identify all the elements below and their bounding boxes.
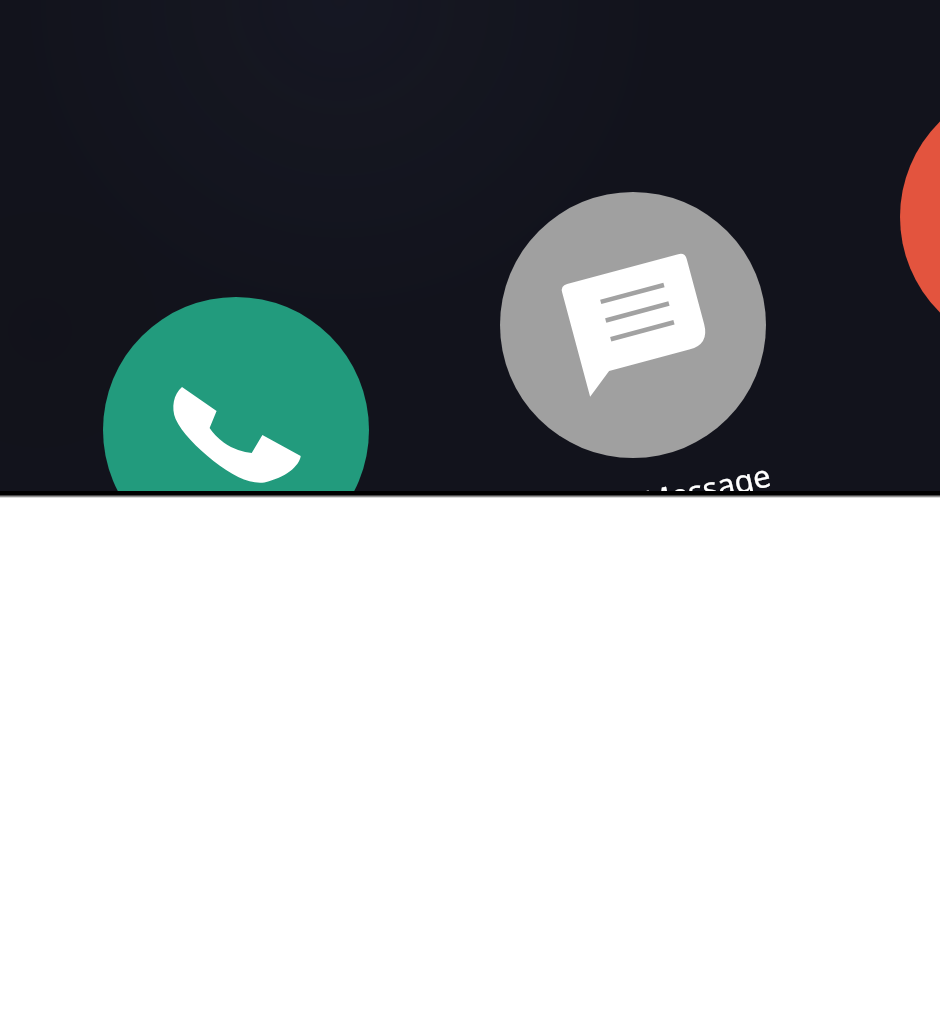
staticText: Message xyxy=(639,453,775,491)
button[interactable]: Messages xyxy=(500,192,766,458)
button[interactable]: Phone xyxy=(103,297,369,491)
button[interactable]: Message xyxy=(639,453,775,491)
